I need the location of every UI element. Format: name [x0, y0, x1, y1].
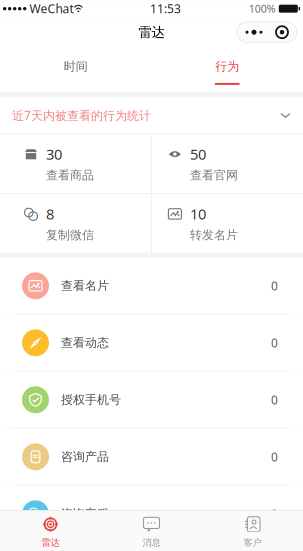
button[interactable]: 客户	[202, 511, 303, 551]
staticText: 0	[271, 506, 278, 522]
button[interactable]: 查看名片	[0, 258, 303, 315]
staticText: 授权手机号	[61, 392, 121, 407]
button[interactable]: 时间	[0, 47, 151, 92]
button[interactable]: 咨询产品	[0, 429, 303, 486]
button[interactable]: 授权手机号	[0, 372, 303, 429]
staticText: 查看商品	[46, 168, 94, 183]
staticText: 复制微信	[46, 228, 94, 242]
staticText: 30	[46, 144, 62, 164]
staticText: 100%	[249, 2, 276, 16]
staticText: 近7天内被查看的行为统计	[12, 107, 151, 123]
staticText: 查看名片	[61, 278, 109, 293]
staticText: 雷达	[41, 537, 59, 548]
staticText: 0	[271, 335, 278, 351]
staticText: 11:53	[150, 1, 181, 17]
staticText: WeChat	[29, 1, 73, 17]
button[interactable]: 雷达	[0, 511, 101, 551]
staticText: 消息	[142, 537, 160, 548]
staticText: 0	[271, 392, 278, 408]
button[interactable]: 行为	[151, 47, 303, 92]
staticText: 10	[190, 204, 206, 224]
staticText: 雷达	[138, 24, 164, 40]
staticText: 50	[190, 144, 206, 164]
staticText: 行为	[215, 59, 239, 74]
button[interactable]: 消息	[101, 511, 202, 551]
staticText: 转发名片	[190, 228, 238, 242]
staticText: 时间	[64, 59, 88, 74]
button[interactable]: 近7天内被查看的行为统计	[0, 97, 303, 133]
button[interactable]: 查看动态	[0, 315, 303, 372]
staticText: 0	[271, 449, 278, 465]
staticText: 咨询产品	[61, 449, 109, 464]
staticText: 客户	[243, 537, 261, 548]
staticText: 查看官网	[190, 168, 238, 183]
button[interactable]: More	[237, 22, 297, 43]
staticText: 查看动态	[61, 335, 109, 350]
staticText: 咨询客服	[61, 506, 109, 521]
staticText: 8	[46, 204, 54, 224]
button[interactable]: 咨询客服	[0, 486, 303, 543]
staticText: 0	[271, 278, 278, 294]
